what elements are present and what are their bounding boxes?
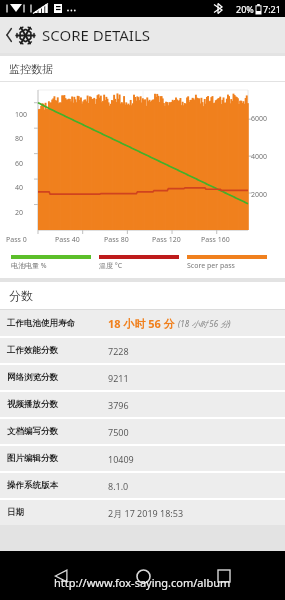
staticText: 40	[15, 183, 24, 193]
button[interactable]: 图片编辑分数	[0, 446, 285, 471]
button[interactable]: Back	[3, 22, 15, 48]
staticText: 20	[15, 208, 24, 218]
staticText: 10409	[108, 453, 134, 465]
staticText: 操作系统版本	[7, 480, 108, 491]
staticText: 工作电池使用寿命	[7, 318, 108, 329]
staticText: 8.1.0	[108, 480, 129, 492]
staticText: Pass 120	[152, 235, 181, 245]
button[interactable]: Home	[122, 555, 164, 597]
staticText: SCORE DETAILS	[42, 25, 151, 45]
staticText: 工作效能分数	[7, 345, 108, 356]
staticText: 7228	[108, 345, 129, 357]
staticText: 100	[15, 110, 28, 120]
button[interactable]: 网络浏览分数	[0, 365, 285, 390]
staticText: 监控数据	[9, 62, 53, 76]
staticText: 电池电量 %	[11, 261, 47, 271]
staticText: 文档编写分数	[7, 426, 108, 437]
staticText: 6000	[251, 114, 268, 124]
staticText: Pass 0	[6, 235, 27, 245]
button[interactable]: Back	[40, 555, 82, 597]
button[interactable]: 工作效能分数	[0, 338, 285, 363]
staticText: http://www.fox-saying.com/album	[54, 575, 231, 590]
button[interactable]: 视频播放分数	[0, 392, 285, 417]
other: 3DMark	[15, 25, 36, 46]
staticText: Score per pass	[187, 261, 235, 271]
button[interactable]: Recents	[203, 555, 245, 597]
staticText: Pass 40	[55, 235, 80, 245]
staticText: 7500	[108, 426, 129, 438]
staticText: 60	[15, 159, 24, 169]
staticText: 3796	[108, 399, 129, 411]
staticText: 网络浏览分数	[7, 372, 108, 383]
button[interactable]: Back	[0, 17, 285, 53]
staticText: 分数	[9, 288, 33, 303]
staticText: 4000	[251, 152, 268, 162]
staticText: 7:21	[263, 3, 281, 15]
staticText: 视频播放分数	[7, 399, 108, 410]
staticText: 温度 °C	[99, 261, 123, 271]
staticText: (18 小时 56 分)	[178, 318, 231, 329]
staticText: 9211	[108, 372, 129, 384]
button[interactable]: 文档编写分数	[0, 419, 285, 444]
staticText: Pass 160	[201, 235, 230, 245]
staticText: 20%	[236, 3, 254, 15]
staticText: 18 小时 56 分	[108, 316, 175, 331]
button[interactable]: 日期	[0, 500, 285, 525]
staticText: 2000	[251, 190, 268, 200]
staticText: 2月 17 2019 18:53	[108, 507, 184, 519]
staticText: 图片编辑分数	[7, 453, 108, 464]
button[interactable]: 操作系统版本	[0, 473, 285, 498]
staticText: Pass 80	[104, 235, 129, 245]
staticText: 日期	[7, 507, 108, 518]
button[interactable]: 工作电池使用寿命	[0, 310, 285, 336]
staticText: 80	[15, 134, 24, 144]
